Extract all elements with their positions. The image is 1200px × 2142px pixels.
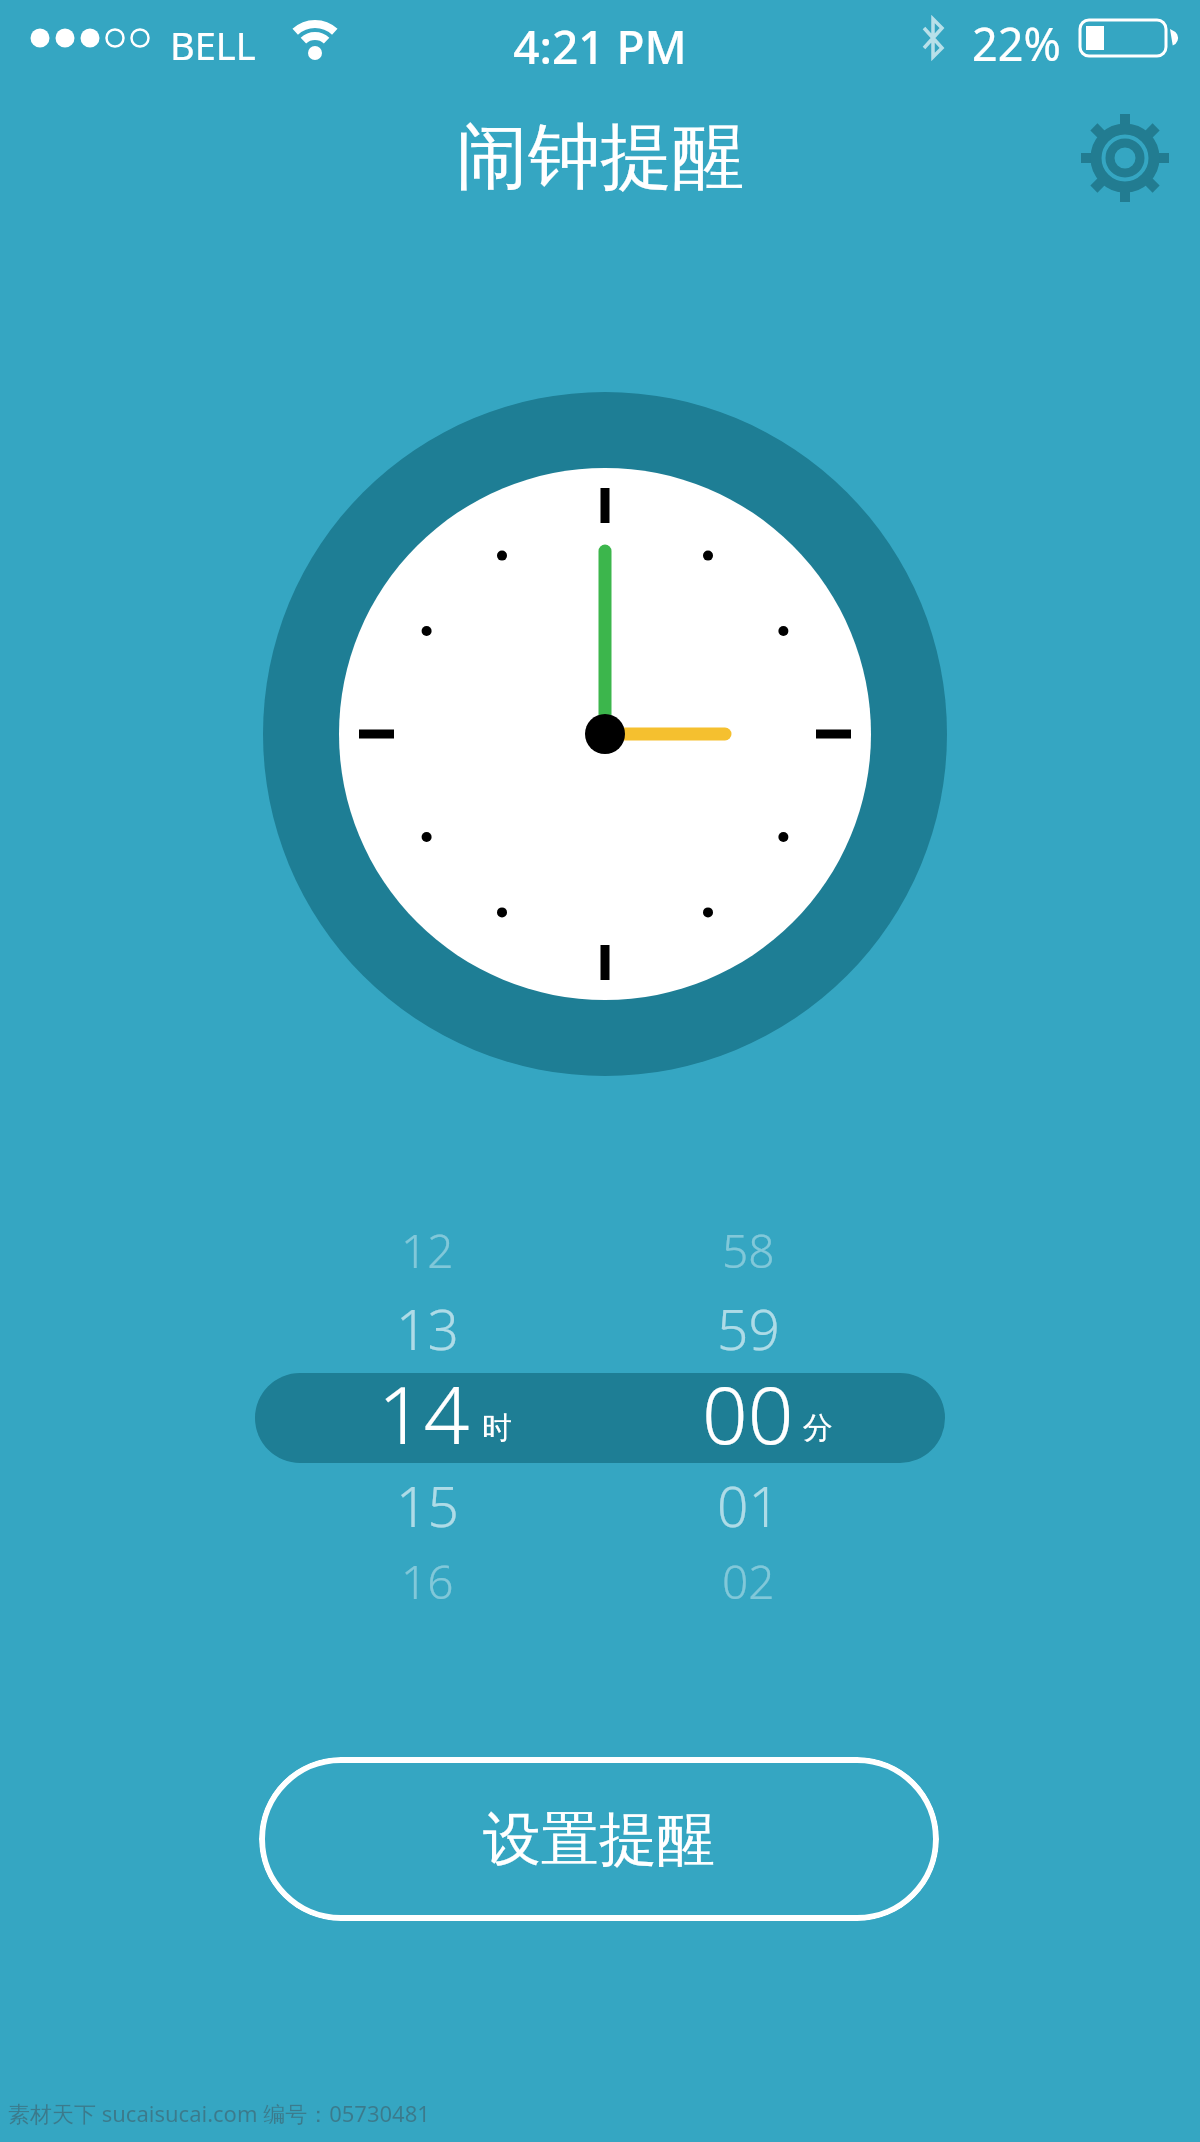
button[interactable]: 59 — [648, 1278, 848, 1378]
staticText: 4:21 PM — [0, 15, 1200, 78]
staticText: 时 — [482, 1409, 512, 1447]
staticText: 闹钟提醒 — [0, 112, 1200, 203]
staticText: 16 — [401, 1550, 454, 1613]
staticText: 设置提醒 — [483, 1803, 715, 1876]
staticText: 14 — [378, 1373, 470, 1448]
button[interactable]: 12 — [327, 1200, 527, 1300]
button[interactable]: 02 — [648, 1531, 848, 1631]
staticText: 分 — [803, 1409, 833, 1447]
staticText: 00 — [702, 1373, 794, 1448]
button[interactable]: 15 — [327, 1455, 527, 1555]
button[interactable] — [1080, 113, 1170, 203]
button[interactable]: 58 — [648, 1200, 848, 1300]
staticText: 58 — [722, 1219, 775, 1282]
staticText: 素材天下 sucaisucai.com 编号：05730481 — [8, 2098, 430, 2128]
staticText: 13 — [396, 1291, 459, 1366]
staticText: BELL — [170, 19, 256, 71]
staticText: 59 — [717, 1291, 780, 1366]
staticText: 02 — [722, 1550, 775, 1613]
button[interactable]: 13 — [327, 1278, 527, 1378]
staticText: 15 — [396, 1468, 459, 1543]
button[interactable]: 16 — [327, 1531, 527, 1631]
button[interactable]: 01 — [648, 1455, 848, 1555]
staticText: 22% — [972, 13, 1061, 74]
staticText: 12 — [401, 1219, 454, 1282]
staticText: 01 — [717, 1468, 780, 1543]
button[interactable]: 14 — [255, 1373, 945, 1463]
button[interactable]: 设置提醒 — [259, 1757, 939, 1921]
